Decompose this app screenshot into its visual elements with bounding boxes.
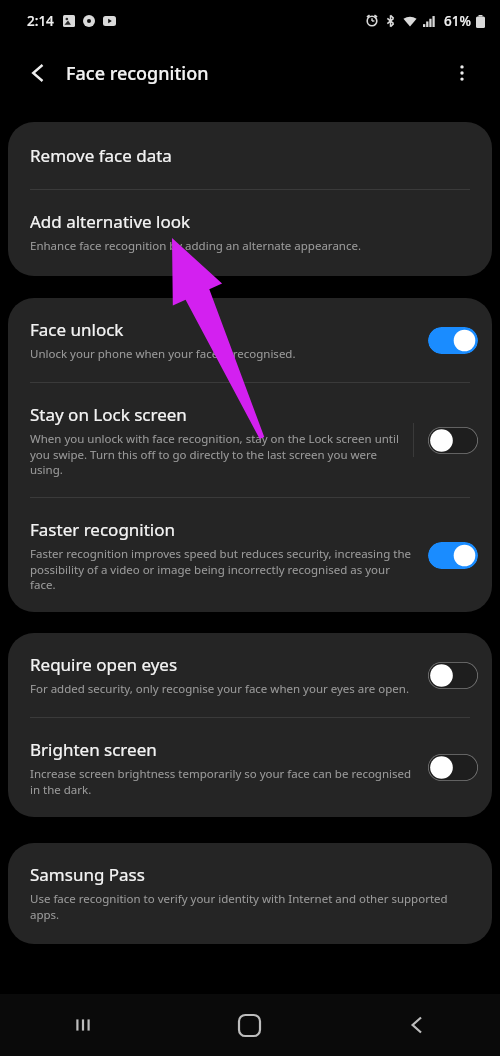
button[interactable]: Face unlock [8, 298, 492, 382]
button[interactable]: Stay on Lock screen [8, 383, 492, 497]
button[interactable]: Faster recognition [8, 498, 492, 612]
button[interactable]: More options [438, 49, 486, 97]
staticText: 2:14 [27, 12, 54, 30]
staticText: Stay on Lock screen [30, 403, 187, 426]
button[interactable]: Recent apps [0, 994, 166, 1056]
button[interactable]: Brighten screen [8, 718, 492, 817]
staticText: Brighten screen [30, 738, 157, 761]
button[interactable]: Back [333, 994, 500, 1056]
button[interactable]: On [428, 542, 478, 569]
staticText: Face unlock [30, 318, 124, 341]
staticText: 61% [444, 12, 471, 30]
button[interactable]: Home [166, 994, 333, 1056]
staticText: Enhance face recognition by adding an al… [30, 238, 362, 254]
button[interactable]: Off [428, 754, 478, 781]
button[interactable]: Require open eyes [8, 633, 492, 717]
button[interactable]: Remove face data [8, 122, 492, 189]
staticText: Faster recognition improves speed but re… [30, 546, 416, 592]
staticText: When you unlock with face recognition, s… [30, 431, 401, 477]
staticText: Remove face data [30, 144, 172, 167]
staticText: Add alternative look [30, 210, 191, 233]
staticText: Use face recognition to verify your iden… [30, 891, 470, 922]
button[interactable]: Off [428, 427, 478, 454]
staticText: Increase screen brightness temporarily s… [30, 766, 416, 797]
button[interactable]: Off [428, 662, 478, 689]
staticText: Require open eyes [30, 653, 178, 676]
button[interactable]: On [428, 327, 478, 354]
staticText: Unlock your phone when your face is reco… [30, 346, 296, 362]
button[interactable]: Back [14, 49, 62, 97]
button[interactable]: Add alternative look [8, 190, 492, 276]
staticText: Samsung Pass [30, 863, 145, 886]
staticText: Face recognition [66, 61, 209, 86]
button[interactable]: Samsung Pass [8, 843, 492, 944]
staticText: For added security, only recognise your … [30, 681, 410, 697]
staticText: Faster recognition [30, 518, 176, 541]
